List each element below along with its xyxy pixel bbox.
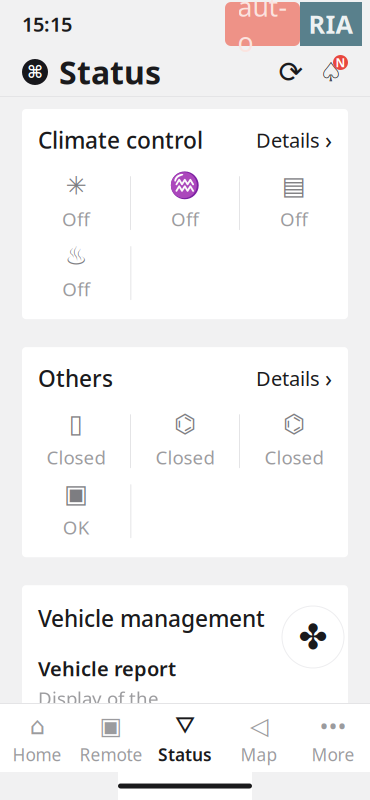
staticText: ▯ xyxy=(69,409,83,438)
staticText: ⌬ xyxy=(283,409,305,438)
button[interactable]: ✳ xyxy=(22,173,130,233)
button[interactable]: ♨ xyxy=(22,243,130,303)
staticText: ••• xyxy=(319,710,346,742)
button[interactable]: ♒ xyxy=(131,173,239,233)
button[interactable]: Vehicle report xyxy=(22,633,348,755)
staticText: ▣ xyxy=(64,479,88,508)
button[interactable]: ▣ xyxy=(74,716,148,766)
staticText: Vehicle report xyxy=(38,655,176,682)
staticText: Home xyxy=(12,743,61,766)
staticText: ✤ xyxy=(298,617,327,657)
staticText: ♨ xyxy=(65,241,88,270)
staticText: Status xyxy=(59,51,161,93)
button[interactable]: ◁ xyxy=(222,716,296,766)
staticText: Details xyxy=(256,365,320,391)
staticText: Closed xyxy=(46,445,105,470)
staticText: Map xyxy=(240,743,277,766)
staticText: ◁ xyxy=(250,712,268,740)
staticText: Closed xyxy=(155,445,214,470)
staticText: 15:15 xyxy=(22,11,72,37)
staticText: OK xyxy=(63,515,90,540)
staticText: Remote xyxy=(79,743,142,766)
button[interactable]: ▯ xyxy=(22,411,130,471)
staticText: Display of the vehicle report xyxy=(38,686,160,735)
staticText: Off xyxy=(280,207,308,231)
staticText: Others xyxy=(38,363,113,393)
staticText: ▣ xyxy=(99,712,122,740)
staticText: More xyxy=(311,743,354,766)
button[interactable]: ⌬ xyxy=(131,411,239,471)
button[interactable]: ⛛ xyxy=(148,716,222,766)
staticText: Off xyxy=(171,207,199,231)
staticText: Off xyxy=(62,277,90,301)
staticText: Closed xyxy=(264,445,323,470)
staticText: auto xyxy=(237,0,287,59)
staticText: ⛛ xyxy=(175,714,195,738)
button[interactable]: Details xyxy=(256,125,332,155)
staticText: Details xyxy=(256,127,320,153)
staticText: ✳ xyxy=(65,171,86,200)
button[interactable]: ⌬ xyxy=(240,411,348,471)
button[interactable]: ••• xyxy=(296,716,370,766)
button[interactable]: Details xyxy=(256,363,332,393)
staticText: ▤ xyxy=(282,171,306,200)
staticText: ♤ xyxy=(319,57,343,87)
button[interactable]: Notifications xyxy=(314,55,348,89)
staticText: ⟳ xyxy=(278,55,303,89)
button[interactable]: ⌂ xyxy=(0,716,74,766)
staticText: › xyxy=(325,363,332,393)
staticText: RIA xyxy=(308,7,353,41)
button[interactable]: Refresh xyxy=(274,55,308,89)
staticText: Vehicle management xyxy=(38,603,265,633)
staticText: ⌂ xyxy=(29,712,44,740)
staticText: Climate control xyxy=(38,125,203,155)
button[interactable]: ⌘ xyxy=(22,51,161,93)
button[interactable]: ▤ xyxy=(240,173,348,233)
staticText: › xyxy=(325,125,332,155)
button[interactable]: ▣ xyxy=(22,481,130,541)
staticText: ♒ xyxy=(169,171,201,200)
button[interactable]: Climate quick action xyxy=(282,606,344,668)
staticText: Status xyxy=(158,743,212,766)
staticText: ⌘ xyxy=(27,62,43,82)
staticText: N xyxy=(335,54,345,70)
staticText: ⌬ xyxy=(174,409,196,438)
staticText: Off xyxy=(62,207,90,231)
